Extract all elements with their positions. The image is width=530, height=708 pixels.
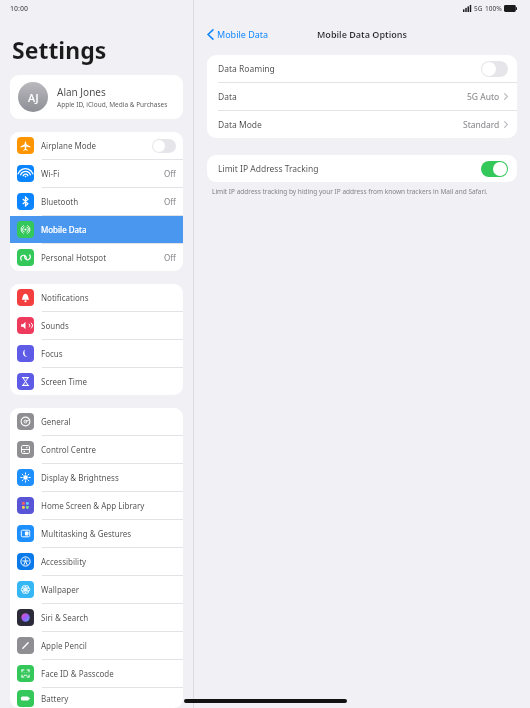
button[interactable]: Notifications — [10, 284, 183, 311]
staticText: Data Roaming — [218, 63, 275, 75]
staticText: Notifications — [41, 292, 89, 303]
button[interactable]: Control Centre — [10, 436, 183, 463]
staticText: Data — [218, 91, 237, 103]
staticText: Wi-Fi — [41, 168, 60, 179]
staticText: Mobile Data — [41, 224, 87, 235]
button[interactable]: Siri & Search — [10, 604, 183, 631]
staticText: Off — [164, 252, 176, 263]
staticText: Sounds — [41, 320, 69, 331]
staticText: Mobile Data — [217, 28, 269, 40]
button[interactable]: Limit IP Address Tracking — [207, 155, 517, 182]
staticText: 5G — [474, 4, 483, 13]
staticText: Multitasking & Gestures — [41, 528, 132, 539]
staticText: Data Mode — [218, 119, 262, 131]
staticText: Personal Hotspot — [41, 252, 107, 263]
button[interactable]: Bluetooth — [10, 188, 183, 215]
button[interactable]: Apple Pencil — [10, 632, 183, 659]
staticText: Home Screen & App Library — [41, 500, 145, 511]
staticText: 5G Auto — [467, 91, 500, 103]
button[interactable]: Battery — [10, 688, 183, 708]
staticText: Settings — [12, 34, 107, 65]
staticText: Bluetooth — [41, 196, 79, 207]
staticText: AJ — [28, 90, 39, 105]
button[interactable]: General — [10, 408, 183, 435]
staticText: Limit IP Address Tracking — [218, 163, 319, 175]
staticText: Off — [164, 168, 176, 179]
staticText: Wallpaper — [41, 584, 80, 595]
staticText: General — [41, 416, 71, 427]
button[interactable]: Focus — [10, 340, 183, 367]
staticText: Apple Pencil — [41, 640, 87, 651]
staticText: 100% — [485, 4, 502, 13]
button[interactable]: Accessibility — [10, 548, 183, 575]
staticText: Airplane Mode — [41, 140, 97, 151]
button[interactable]: Toggle — [481, 61, 508, 77]
button[interactable]: Screen Time — [10, 368, 183, 395]
button[interactable]: Wi-Fi — [10, 160, 183, 187]
button[interactable]: Face ID & Passcode — [10, 660, 183, 687]
staticText: Siri & Search — [41, 612, 89, 623]
staticText: Face ID & Passcode — [41, 668, 114, 679]
button[interactable]: Toggle — [481, 161, 508, 177]
staticText: Limit IP address tracking by hiding your… — [212, 187, 488, 196]
button[interactable]: Multitasking & Gestures — [10, 520, 183, 547]
button[interactable]: Sounds — [10, 312, 183, 339]
staticText: Off — [164, 196, 176, 207]
staticText: Accessibility — [41, 556, 87, 567]
button[interactable]: Home Screen & App Library — [10, 492, 183, 519]
button[interactable]: Wallpaper — [10, 576, 183, 603]
button[interactable]: Data Mode — [207, 111, 517, 138]
staticText: Screen Time — [41, 376, 87, 387]
button[interactable]: Data — [207, 83, 517, 110]
staticText: 10:00 — [10, 4, 28, 14]
button[interactable]: AJ — [10, 75, 183, 119]
button[interactable]: Mobile Data — [10, 216, 183, 243]
staticText: Focus — [41, 348, 63, 359]
button[interactable]: Personal Hotspot — [10, 244, 183, 271]
button[interactable]: Back to Mobile Data — [207, 28, 269, 40]
staticText: Apple ID, iCloud, Media & Purchases — [57, 100, 168, 109]
staticText: Display & Brightness — [41, 472, 119, 483]
button[interactable]: Data Roaming — [207, 55, 517, 82]
button[interactable]: Toggle — [152, 139, 176, 153]
button[interactable]: Display & Brightness — [10, 464, 183, 491]
button[interactable]: Airplane Mode — [10, 132, 183, 159]
staticText: Control Centre — [41, 444, 96, 455]
staticText: Alan Jones — [57, 85, 106, 99]
staticText: Battery — [41, 693, 69, 704]
staticText: Standard — [463, 119, 500, 131]
staticText: Mobile Data Options — [317, 28, 408, 40]
